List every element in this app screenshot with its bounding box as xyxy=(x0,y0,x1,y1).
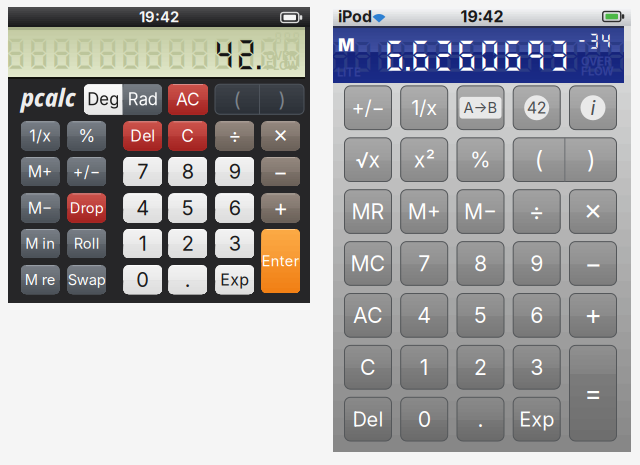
staticText: Del xyxy=(130,126,155,145)
button[interactable]: +/− xyxy=(344,86,391,130)
staticText: MC xyxy=(350,250,385,276)
button[interactable]: Del xyxy=(344,397,391,441)
button[interactable]: % xyxy=(67,121,106,150)
staticText: M xyxy=(338,34,355,55)
button[interactable]: 4 xyxy=(123,193,162,222)
button[interactable]: Deg xyxy=(84,84,162,114)
button[interactable]: Swap xyxy=(67,265,106,294)
button[interactable]: M+ xyxy=(401,190,448,233)
button[interactable]: 1/x xyxy=(401,86,448,130)
button[interactable]: 1 xyxy=(401,345,448,389)
staticText: 9 xyxy=(229,159,241,184)
staticText: FLOW xyxy=(581,65,614,78)
button[interactable]: = xyxy=(569,345,616,441)
staticText: Deg xyxy=(87,89,119,109)
button[interactable]: 6 xyxy=(215,193,254,222)
button[interactable]: ( xyxy=(513,138,616,181)
button[interactable]: 5 xyxy=(457,293,504,337)
staticText: 8888888888888 xyxy=(4,34,303,72)
button[interactable]: C xyxy=(168,121,207,150)
button[interactable]: + xyxy=(261,193,300,222)
button[interactable]: 8 xyxy=(168,157,207,186)
staticText: 1/x xyxy=(411,96,437,120)
button[interactable]: ÷ xyxy=(513,190,560,233)
button[interactable]: i xyxy=(569,86,616,130)
button[interactable]: ( xyxy=(215,84,304,114)
staticText: 8888888888888 xyxy=(328,37,627,75)
button[interactable]: Drop xyxy=(67,193,106,222)
staticText: 3 xyxy=(530,354,543,380)
button[interactable]: 3 xyxy=(215,229,254,258)
staticText: Del xyxy=(352,407,383,431)
button[interactable]: M in xyxy=(21,229,59,258)
staticText: +/− xyxy=(73,162,101,181)
button[interactable]: 8 xyxy=(457,242,504,285)
staticText: -888 xyxy=(265,31,301,45)
button[interactable]: M+ xyxy=(21,157,59,186)
button[interactable]: . xyxy=(457,397,504,441)
button[interactable]: 7 xyxy=(123,157,162,186)
button[interactable]: MC xyxy=(344,242,391,285)
staticText: 8 xyxy=(474,250,487,276)
staticText: Drop xyxy=(70,199,104,217)
button[interactable]: 2 xyxy=(457,345,504,389)
button[interactable]: ✕ xyxy=(569,190,616,233)
staticText: -34 xyxy=(576,31,612,50)
button[interactable]: + xyxy=(569,293,616,337)
staticText: % xyxy=(470,147,491,172)
staticText: + xyxy=(584,299,601,331)
staticText: +/− xyxy=(351,96,384,120)
staticText: 5 xyxy=(182,196,194,220)
button[interactable]: Roll xyxy=(67,229,106,258)
button[interactable]: 1 xyxy=(123,229,162,258)
button[interactable]: Exp xyxy=(215,265,254,294)
button[interactable]: 2 xyxy=(168,229,207,258)
button[interactable]: +/− xyxy=(67,157,106,186)
button[interactable]: ✕ xyxy=(261,121,300,150)
button[interactable]: Exp xyxy=(513,397,560,441)
staticText: 0 xyxy=(418,406,431,432)
staticText: ( xyxy=(535,145,543,174)
staticText: AC xyxy=(353,302,383,328)
button[interactable]: Enter xyxy=(261,229,300,293)
staticText: M re xyxy=(25,271,56,288)
button[interactable]: 1/x xyxy=(21,121,59,150)
staticText: = xyxy=(584,377,601,409)
button[interactable]: 0 xyxy=(401,397,448,441)
button[interactable]: . xyxy=(168,265,207,294)
button[interactable]: M re xyxy=(21,265,59,294)
button[interactable]: AC xyxy=(168,84,208,114)
button[interactable]: MR xyxy=(344,190,391,233)
staticText: Roll xyxy=(74,235,100,252)
button[interactable]: Del xyxy=(123,121,162,150)
staticText: M− xyxy=(28,198,53,218)
button[interactable]: M− xyxy=(457,190,504,233)
button[interactable]: A→B xyxy=(457,86,504,130)
button[interactable]: ÷ xyxy=(215,121,254,150)
button[interactable]: − xyxy=(261,157,300,186)
button[interactable]: C xyxy=(344,345,391,389)
button[interactable]: % xyxy=(457,138,504,181)
button[interactable]: x² xyxy=(401,138,448,181)
button[interactable]: 9 xyxy=(513,242,560,285)
staticText: M+ xyxy=(28,162,53,181)
button[interactable]: 0 xyxy=(123,265,162,294)
button[interactable]: M− xyxy=(21,193,59,222)
button[interactable]: 42 xyxy=(513,86,560,130)
button[interactable]: 4 xyxy=(401,293,448,337)
staticText: M− xyxy=(464,199,497,224)
staticText: C xyxy=(360,354,376,380)
staticText: A→B xyxy=(463,99,497,117)
staticText: ) xyxy=(278,87,285,111)
button[interactable]: √x xyxy=(344,138,391,181)
staticText: MR xyxy=(351,199,384,224)
button[interactable]: 7 xyxy=(401,242,448,285)
button[interactable]: 3 xyxy=(513,345,560,389)
button[interactable]: − xyxy=(569,242,616,285)
button[interactable]: 6 xyxy=(513,293,560,337)
staticText: 7 xyxy=(418,250,430,276)
staticText: + xyxy=(273,194,288,222)
button[interactable]: AC xyxy=(344,293,391,337)
button[interactable]: 5 xyxy=(168,193,207,222)
button[interactable]: 9 xyxy=(215,157,254,186)
